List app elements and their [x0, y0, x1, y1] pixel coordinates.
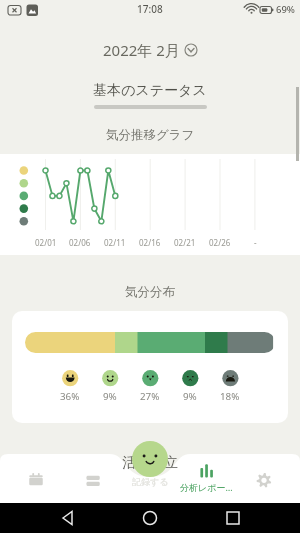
- button[interactable]: Back: [53, 503, 83, 533]
- staticText: 02/16: [139, 237, 161, 248]
- staticText: 9%: [103, 390, 117, 403]
- button[interactable]: Calendar: [8, 441, 64, 503]
- button[interactable]: List: [64, 441, 121, 503]
- staticText: 記録する: [132, 476, 169, 487]
- staticText: 18%: [220, 390, 240, 403]
- staticText: 02/11: [104, 237, 126, 248]
- staticText: 9%: [183, 390, 197, 403]
- staticText: 36%: [60, 390, 80, 403]
- button[interactable]: Analysis report: [178, 441, 235, 503]
- button[interactable]: Record mood: [132, 441, 168, 477]
- staticText: 69%: [276, 3, 295, 16]
- staticText: 17:08: [137, 2, 163, 16]
- staticText: 基本のステータス: [93, 82, 207, 100]
- staticText: 活動記立: [122, 454, 178, 472]
- button[interactable]: Recents: [218, 503, 248, 533]
- staticText: 02/06: [69, 237, 91, 248]
- staticText: 02/01: [35, 237, 57, 248]
- staticText: 27%: [140, 390, 160, 403]
- staticText: -: [254, 237, 257, 248]
- button[interactable]: 2022年 2月: [95, 38, 206, 62]
- staticText: 気分推移グラフ: [106, 127, 195, 143]
- staticText: 気分分布: [125, 284, 175, 300]
- staticText: 分析レポー…: [180, 481, 233, 493]
- staticText: 02/26: [209, 237, 231, 248]
- staticText: 2022年 2月: [103, 40, 180, 60]
- button[interactable]: 基本のステータス: [79, 79, 221, 103]
- button[interactable]: Settings: [235, 441, 292, 503]
- staticText: 02/21: [174, 237, 196, 248]
- button[interactable]: Home: [135, 503, 165, 533]
